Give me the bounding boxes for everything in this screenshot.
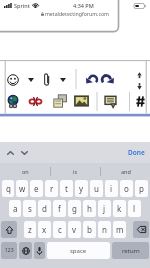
button[interactable]: is [51, 163, 100, 180]
button[interactable]: f [53, 200, 66, 217]
button[interactable]: Next field [17, 146, 31, 160]
button[interactable]: Insert link [5, 93, 21, 110]
button[interactable]: b [83, 221, 96, 238]
staticText: b [87, 224, 92, 235]
button[interactable]: Insert media [51, 92, 69, 110]
button[interactable]: Move block [135, 70, 144, 92]
button[interactable]: v [68, 221, 81, 238]
staticText: e [34, 183, 39, 194]
button[interactable]: Previous field [3, 146, 17, 160]
staticText: space [70, 247, 87, 255]
button[interactable]: and [101, 163, 150, 180]
button[interactable]: y [75, 180, 88, 197]
button[interactable]: e [30, 180, 43, 197]
staticText: v [72, 224, 77, 235]
button[interactable]: Insert quote [102, 93, 119, 110]
button[interactable]: Insert code [134, 94, 147, 109]
button[interactable]: Insert image [72, 92, 91, 110]
staticText: h [87, 203, 92, 214]
button[interactable]: s [23, 200, 36, 217]
staticText: r [50, 183, 54, 194]
staticText: j [103, 203, 106, 214]
button[interactable]: a [9, 200, 21, 217]
staticText: d [42, 203, 47, 214]
button[interactable]: Backspace [133, 221, 149, 238]
button[interactable]: Remove link [27, 94, 44, 109]
button[interactable]: w [16, 180, 28, 197]
button[interactable]: u [90, 180, 103, 197]
button[interactable]: i [105, 180, 118, 197]
staticText: Sprint [14, 2, 30, 9]
staticText: Done [128, 148, 145, 157]
button[interactable]: Smilies [5, 72, 21, 88]
staticText: t [65, 183, 68, 194]
staticText: s [28, 203, 32, 214]
staticText: z [28, 224, 32, 235]
button[interactable]: g [68, 200, 81, 217]
button[interactable]: Switch keyboard [19, 242, 32, 259]
staticText: q [6, 183, 11, 194]
staticText: x [42, 224, 47, 235]
staticText: 123 [5, 247, 14, 254]
staticText: w [19, 183, 26, 194]
button[interactable]: space [47, 242, 110, 259]
button[interactable]: Undo [83, 72, 100, 87]
button[interactable]: x [38, 221, 51, 238]
staticText: g [72, 203, 77, 214]
staticText: y [79, 183, 84, 194]
button[interactable]: c [53, 221, 66, 238]
button[interactable]: m [113, 221, 126, 238]
button[interactable]: Done [126, 146, 147, 159]
button[interactable]: k [113, 200, 126, 217]
staticText: u [94, 183, 99, 194]
button[interactable]: return [112, 242, 149, 259]
button[interactable]: 123 [1, 242, 17, 259]
button[interactable]: t [60, 180, 73, 197]
staticText: k [117, 203, 122, 214]
staticText: is [73, 168, 78, 175]
staticText: p [139, 183, 144, 194]
staticText: m [116, 224, 124, 235]
staticText: and [121, 168, 131, 175]
staticText: 4:34 PM [73, 2, 94, 9]
staticText: metaldetectingforum.com [45, 10, 109, 17]
button[interactable]: Dictate [34, 242, 45, 259]
staticText: return [122, 247, 140, 255]
staticText: l [133, 203, 136, 214]
staticText: n [102, 224, 107, 235]
button[interactable]: Shift [1, 221, 17, 238]
button[interactable]: on [0, 163, 50, 180]
button[interactable]: o [120, 180, 133, 197]
button[interactable]: l [128, 200, 141, 217]
staticText: on [22, 168, 29, 175]
button[interactable]: j [98, 200, 111, 217]
button[interactable]: Redo [99, 72, 117, 87]
button[interactable]: z [24, 221, 36, 238]
button[interactable]: More attachments [58, 76, 68, 84]
button[interactable]: n [98, 221, 111, 238]
button[interactable]: More smilies [26, 76, 36, 84]
staticText: f [58, 203, 61, 214]
staticText: i [110, 183, 113, 194]
button[interactable]: p [135, 180, 148, 197]
button[interactable]: q [2, 180, 14, 197]
staticText: o [124, 183, 129, 194]
button[interactable]: Attach file [42, 71, 52, 88]
staticText: c [58, 224, 62, 235]
button[interactable]: r [45, 180, 58, 197]
button[interactable]: h [83, 200, 96, 217]
staticText: a [13, 203, 18, 214]
button[interactable]: d [38, 200, 51, 217]
